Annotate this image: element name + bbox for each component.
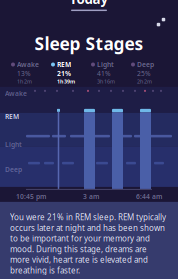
staticText: 41% bbox=[97, 69, 111, 78]
staticText: 1h 39m bbox=[57, 78, 75, 85]
button[interactable]: Collapse bbox=[152, 13, 170, 31]
button[interactable]: REM bbox=[51, 60, 87, 85]
staticText: 21% bbox=[57, 69, 71, 78]
staticText: Deep bbox=[5, 165, 22, 174]
staticText: 25% bbox=[137, 69, 151, 78]
staticText: Light bbox=[97, 60, 114, 69]
staticText: REM bbox=[5, 112, 19, 121]
staticText: Deep bbox=[137, 60, 154, 69]
staticText: Awake bbox=[17, 60, 39, 69]
staticText: Today bbox=[69, 0, 108, 8]
staticText: Light bbox=[5, 140, 22, 149]
staticText: Awake bbox=[5, 89, 27, 98]
staticText: 3 am bbox=[83, 192, 99, 201]
staticText: 13% bbox=[17, 69, 31, 78]
staticText: You were 21% in REM sleep. REM typically… bbox=[10, 212, 166, 276]
button[interactable]: Light bbox=[91, 60, 127, 85]
staticText: REM bbox=[57, 60, 71, 69]
staticText: Sleep Stages bbox=[34, 32, 143, 55]
button[interactable]: Deep bbox=[131, 60, 167, 85]
staticText: 6:44 am bbox=[136, 192, 162, 201]
button[interactable]: Today bbox=[59, 0, 118, 14]
staticText: 10:45 pm bbox=[16, 192, 46, 201]
staticText: 3h 16m bbox=[97, 78, 115, 85]
staticText: 1h 2m bbox=[17, 78, 32, 85]
staticText: 2h 2m bbox=[137, 78, 152, 85]
button[interactable]: Awake bbox=[11, 60, 47, 85]
